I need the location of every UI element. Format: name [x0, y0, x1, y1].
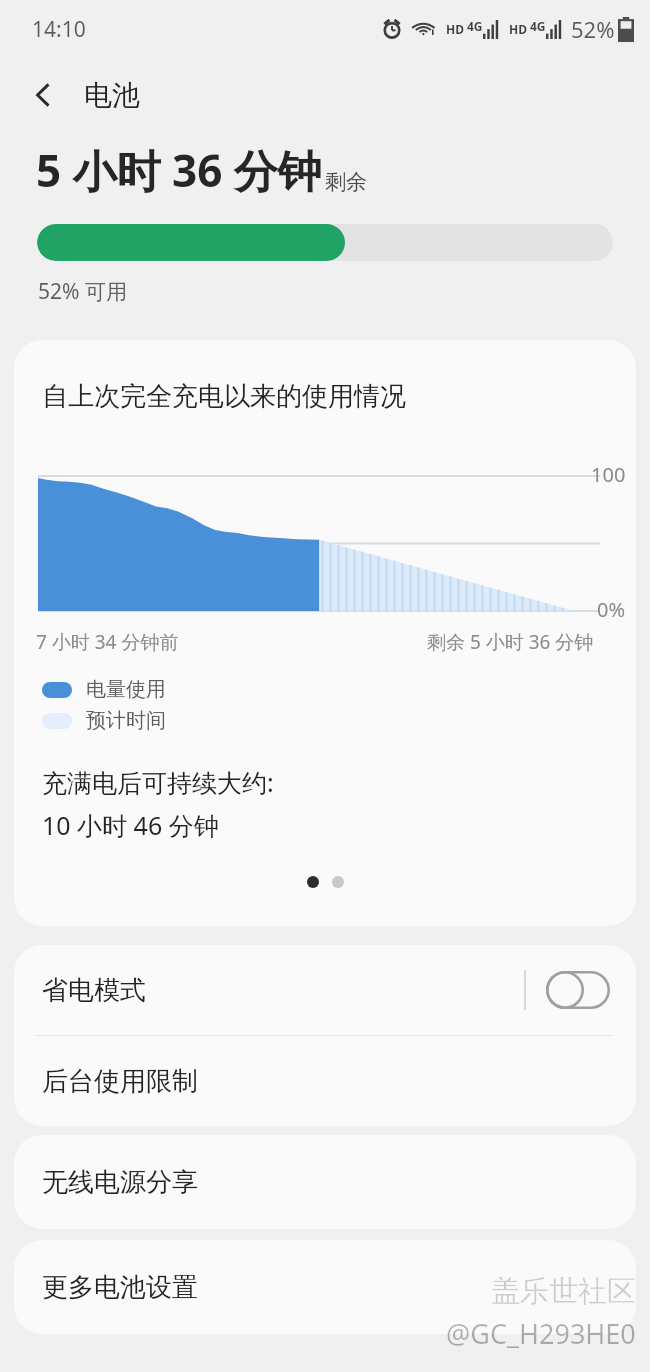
staticText: 10 小时 46 分钟: [42, 808, 219, 842]
staticText: 预计时间: [86, 708, 166, 733]
staticText: 自上次完全充电以来的使用情况: [42, 380, 406, 413]
button[interactable]: 省电模式开关: [546, 971, 610, 1009]
button[interactable]: 后台使用限制: [14, 1036, 636, 1126]
staticText: 无线电源分享: [42, 1166, 198, 1199]
staticText: HD: [509, 21, 527, 37]
button[interactable]: 无线电源分享: [14, 1135, 636, 1229]
staticText: 4G: [530, 18, 546, 34]
staticText: 4G: [467, 18, 483, 34]
staticText: 52% 可用: [38, 277, 127, 306]
staticText: 5 小时 36 分钟: [36, 140, 322, 200]
staticText: 100: [591, 461, 626, 488]
staticText: @GC_H293HE0: [446, 1315, 636, 1352]
staticText: HD: [446, 21, 464, 37]
button[interactable]: 省电模式: [14, 945, 636, 1035]
staticText: 更多电池设置: [42, 1271, 198, 1304]
staticText: 52%: [571, 14, 615, 44]
staticText: 省电模式: [42, 974, 524, 1007]
staticText: 剩余: [325, 169, 367, 195]
button[interactable]: 更多电池设置: [14, 1240, 636, 1334]
staticText: 剩余 5 小时 36 分钟: [427, 629, 594, 655]
staticText: 电量使用: [86, 677, 166, 702]
staticText: 充满电后可持续大约:: [42, 765, 274, 799]
button[interactable]: Back: [16, 67, 72, 123]
staticText: 14:10: [32, 15, 86, 44]
staticText: 7 小时 34 分钟前: [36, 629, 179, 655]
staticText: 盖乐世社区: [491, 1273, 636, 1310]
staticText: 电池: [84, 78, 140, 113]
staticText: 0%: [597, 596, 626, 623]
staticText: 后台使用限制: [42, 1065, 198, 1098]
